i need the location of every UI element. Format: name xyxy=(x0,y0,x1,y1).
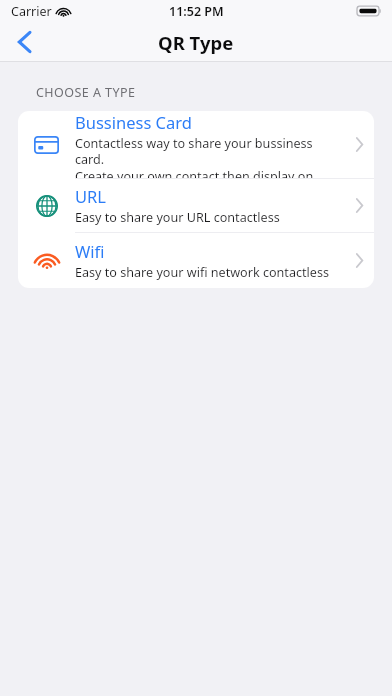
staticText: Carrier xyxy=(11,3,52,20)
staticText: Easy to share your URL contactless xyxy=(75,209,280,226)
staticText: URL xyxy=(75,185,106,207)
button[interactable]: Bussiness Card xyxy=(18,111,374,178)
staticText: CHOOSE A TYPE xyxy=(36,84,136,101)
staticText: Bussiness Card xyxy=(75,111,192,133)
button[interactable]: Back xyxy=(4,22,44,62)
button[interactable]: URL xyxy=(18,179,374,232)
staticText: QR Type xyxy=(158,30,234,55)
staticText: Create your own contact then display on … xyxy=(75,168,344,178)
staticText: Easy to share your wifi network contactl… xyxy=(75,264,329,281)
staticText: 11:52 PM xyxy=(169,3,224,20)
staticText: Wifi xyxy=(75,240,105,262)
button[interactable]: Wifi xyxy=(18,233,374,288)
staticText: Contactless way to share your bussiness … xyxy=(75,135,344,168)
